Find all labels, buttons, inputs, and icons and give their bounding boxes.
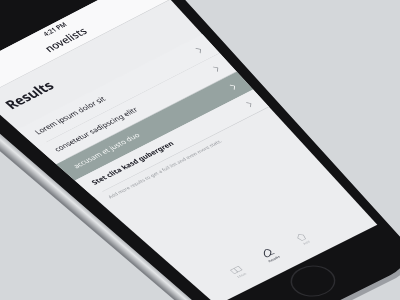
button[interactable] bbox=[0, 0, 400, 300]
